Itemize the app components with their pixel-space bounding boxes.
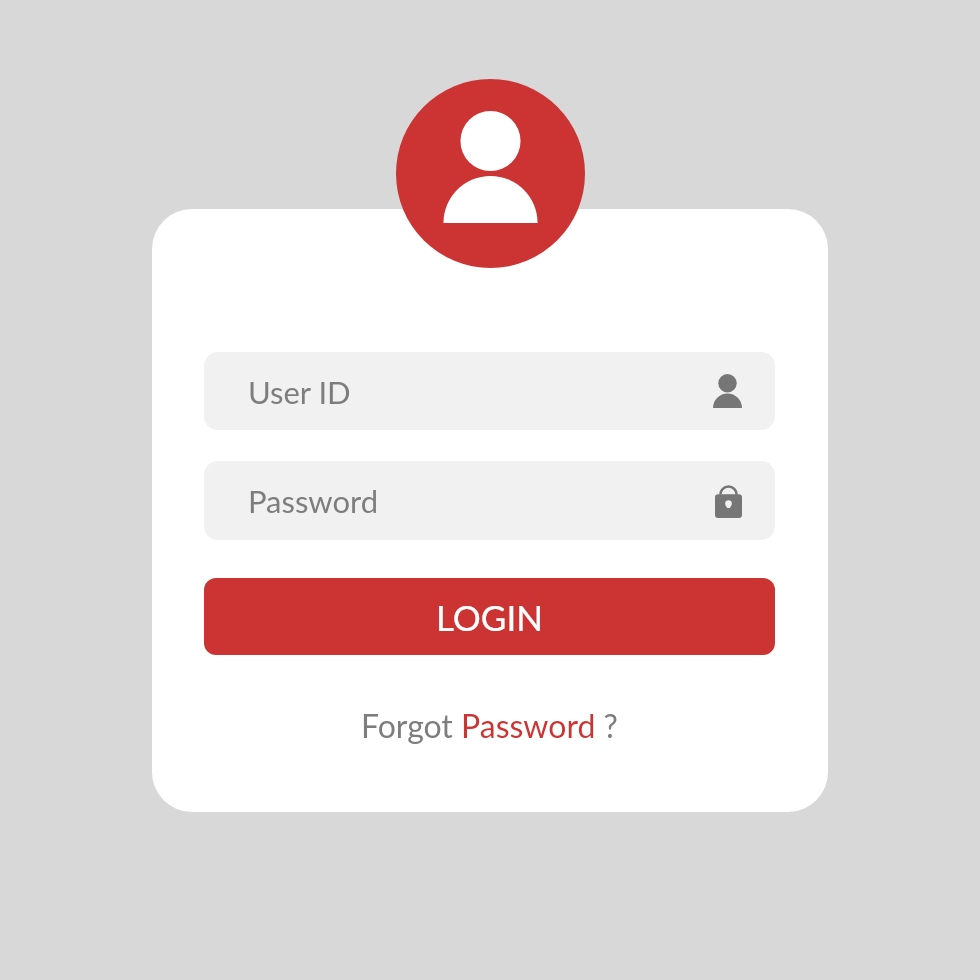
- staticText: Forgot Password ?: [361, 706, 618, 744]
- button[interactable]: LOGIN: [204, 578, 775, 655]
- other: Profile avatar: [396, 79, 585, 268]
- staticText: User ID: [248, 373, 351, 410]
- button[interactable]: Forgot Password ?: [204, 693, 775, 757]
- button[interactable]: User ID: [204, 352, 775, 430]
- staticText: Password: [248, 482, 379, 519]
- staticText: LOGIN: [436, 596, 543, 638]
- button[interactable]: Password: [204, 461, 775, 540]
